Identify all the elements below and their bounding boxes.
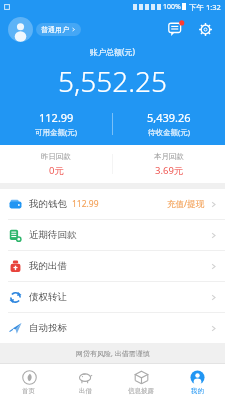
button[interactable]: Settings [193, 17, 217, 41]
staticText: 下午 1:32 [189, 2, 221, 12]
staticText: 普通用户 [41, 25, 69, 34]
staticText: 5,439.26 [147, 110, 191, 125]
staticText: 100% [163, 2, 181, 12]
button[interactable]: 普通用户 [8, 17, 81, 42]
staticText: 近期待回款 [29, 229, 77, 241]
staticText: 我的 [191, 387, 204, 395]
button[interactable]: 我的钱包 [0, 189, 225, 219]
button[interactable]: 首页 [0, 364, 57, 400]
staticText: 自动投标 [29, 322, 67, 334]
button[interactable]: 出借 [57, 364, 113, 400]
button[interactable]: 我的 [169, 364, 225, 400]
button[interactable]: 债权转让 [0, 282, 225, 312]
staticText: 3.69元 [155, 164, 184, 177]
staticText: 首页 [22, 387, 35, 395]
staticText: 我的出借 [29, 260, 67, 272]
button[interactable]: 自动投标 [0, 313, 225, 343]
button[interactable]: Messages [164, 17, 188, 41]
staticText: 债权转让 [29, 291, 67, 303]
staticText: 网贷有风险, 出借需谨慎 [76, 349, 150, 359]
staticText: 可用金额(元) [35, 127, 77, 137]
staticText: 本月回款 [154, 152, 184, 161]
staticText: 我的钱包 [29, 198, 67, 210]
button[interactable]: 我的出借 [0, 251, 225, 281]
staticText: 0元 [49, 164, 64, 177]
button[interactable]: 近期待回款 [0, 220, 225, 250]
staticText: 5,552.25 [58, 62, 168, 100]
staticText: 出借 [79, 387, 92, 395]
staticText: 112.99 [39, 110, 74, 125]
staticText: 信息披露 [128, 387, 154, 395]
staticText: 昨日回款 [41, 152, 71, 161]
staticText: 112.99 [72, 198, 99, 210]
button[interactable]: 信息披露 [113, 364, 169, 400]
staticText: 充值/提现 [167, 198, 205, 210]
staticText: 账户总额(元) [90, 46, 135, 57]
staticText: 待收金额(元) [148, 127, 190, 137]
